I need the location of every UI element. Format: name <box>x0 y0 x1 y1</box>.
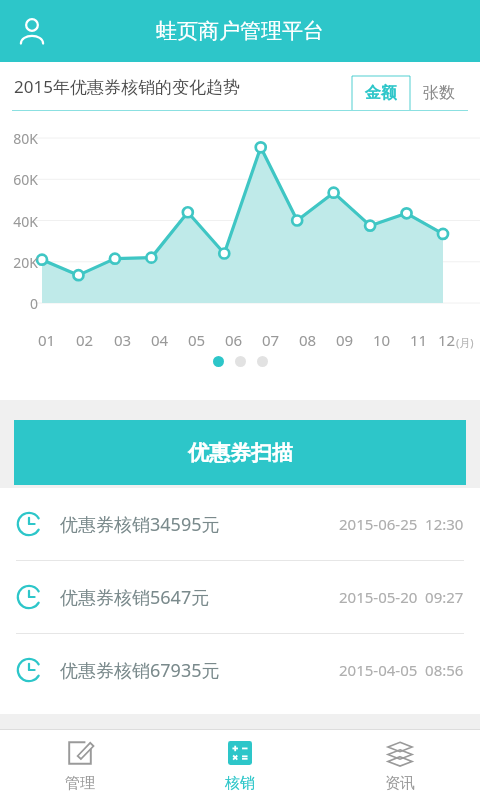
button[interactable]: 张数 <box>410 76 468 110</box>
staticText: 20K <box>13 253 38 272</box>
button[interactable]: 金额 <box>352 76 410 110</box>
staticText: 张数 <box>423 83 455 103</box>
staticText: 03 <box>114 330 132 350</box>
staticText: 2015-05-20 09:27 <box>339 587 464 607</box>
staticText: 优惠券扫描 <box>188 440 293 466</box>
staticText: 金额 <box>365 83 397 103</box>
staticText: 优惠券核销5647元 <box>60 585 210 610</box>
staticText: 06 <box>225 330 243 350</box>
staticText: 2015年优惠券核销的变化趋势 <box>14 75 240 98</box>
staticText: 优惠券核销67935元 <box>60 658 220 683</box>
staticText: 核销 <box>225 774 255 793</box>
staticText: 10 <box>373 330 391 350</box>
staticText: 蛙页商户管理平台 <box>156 18 324 44</box>
button[interactable]: 资讯 <box>320 730 480 800</box>
staticText: 11 <box>410 330 428 350</box>
staticText: 80K <box>13 129 38 148</box>
button[interactable]: Profile <box>6 5 58 57</box>
staticText: 40K <box>13 212 38 231</box>
staticText: 02 <box>76 330 94 350</box>
staticText: 05 <box>188 330 206 350</box>
staticText: 2015-04-05 08:56 <box>339 660 464 680</box>
staticText: 0 <box>29 294 38 313</box>
button[interactable]: 核销 <box>160 730 320 800</box>
staticText: 管理 <box>65 774 95 793</box>
staticText: 优惠券核销34595元 <box>60 512 220 537</box>
staticText: (月) <box>456 335 474 350</box>
staticText: 08 <box>299 330 317 350</box>
staticText: 2015-06-25 12:30 <box>339 514 464 534</box>
button[interactable]: 管理 <box>0 730 160 800</box>
staticText: 60K <box>13 170 38 189</box>
staticText: 09 <box>336 330 354 350</box>
staticText: 04 <box>151 330 169 350</box>
staticText: 资讯 <box>385 774 415 793</box>
staticText: 12 <box>438 330 456 350</box>
staticText: 01 <box>38 330 56 350</box>
button[interactable]: 优惠券扫描 <box>14 420 466 485</box>
staticText: 07 <box>262 330 280 350</box>
button[interactable]: 优惠券核销5647元 <box>0 561 480 633</box>
button[interactable]: 优惠券核销67935元 <box>0 634 480 706</box>
button[interactable]: 优惠券核销34595元 <box>0 488 480 560</box>
